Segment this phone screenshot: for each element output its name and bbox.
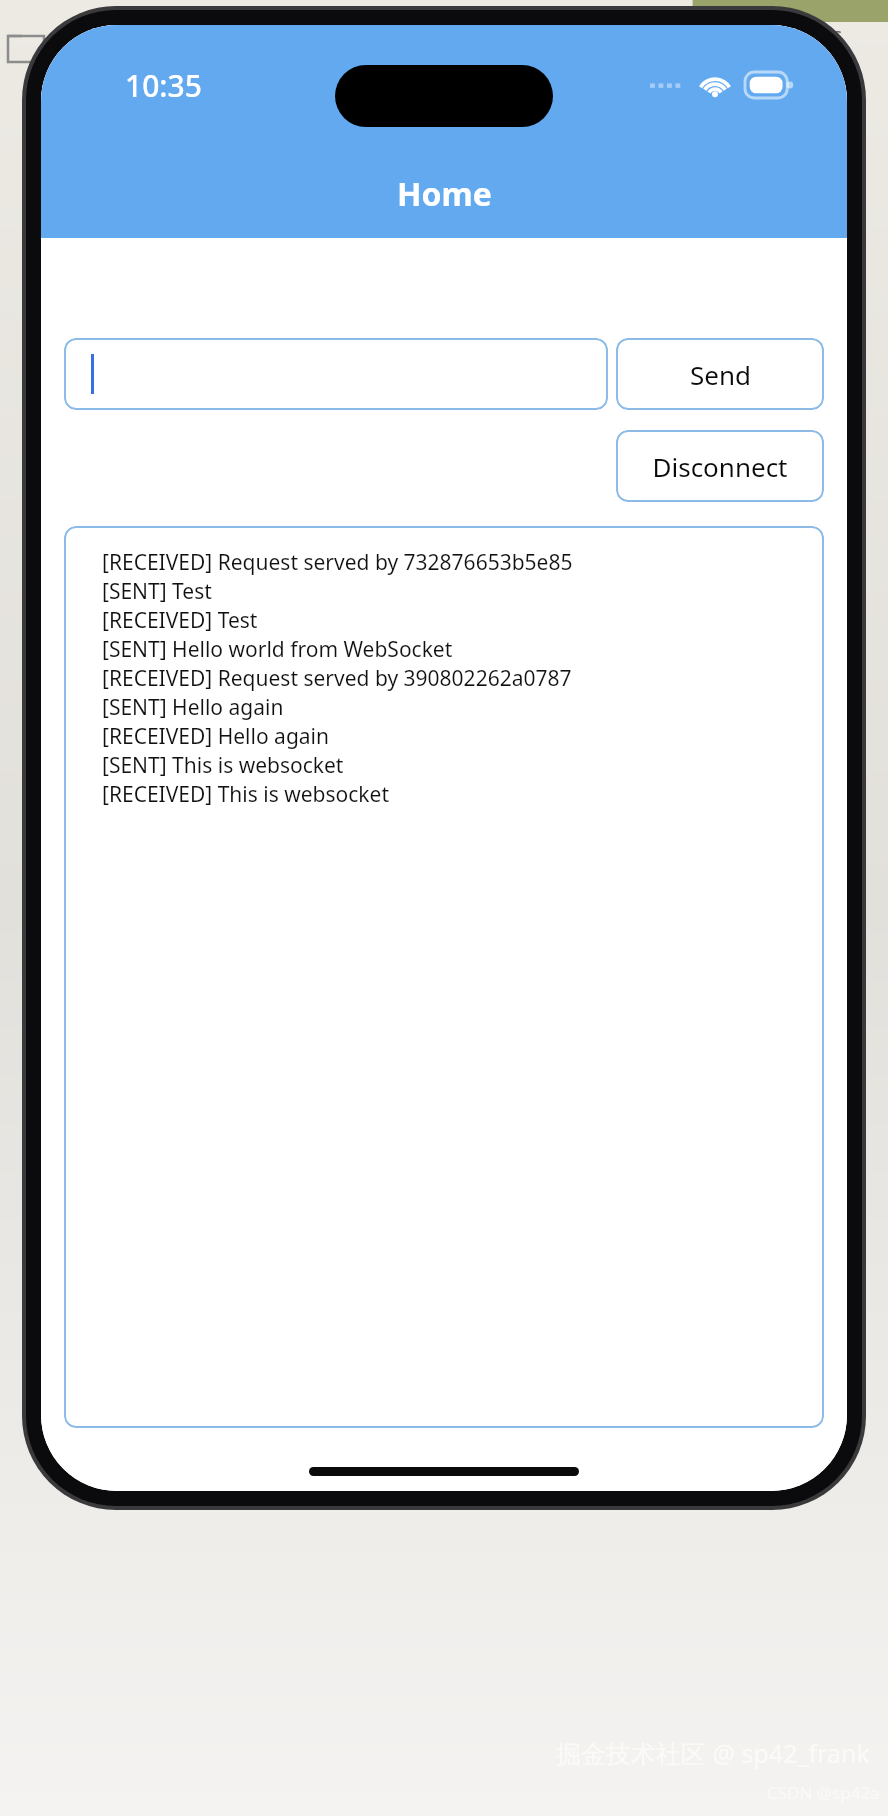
staticText: rks [815,22,843,48]
staticText: [RECEIVED] Test [102,606,258,635]
staticText: Home [397,172,492,216]
staticText: [SENT] This is websocket [102,751,344,780]
staticText: [SENT] Hello again [102,693,284,722]
staticText: [SENT] Test [102,577,212,606]
staticText: 10:35 [125,65,202,106]
staticText: [RECEIVED] Hello again [102,722,329,751]
staticText: Send [690,357,751,392]
staticText: [RECEIVED] This is websocket [102,780,389,809]
staticText: [SENT] Hello world from WebSocket [102,635,453,664]
button[interactable]: Message input [64,338,608,410]
button[interactable]: Send [616,338,824,410]
staticText: Disconnect [652,449,788,484]
staticText: [RECEIVED] Request served by 732876653b5… [102,548,573,577]
staticText: [RECEIVED] Request served by 390802262a0… [102,664,572,693]
button[interactable]: Disconnect [616,430,824,502]
staticText: 掘金技术社区 @ sp42_frank [556,1736,870,1770]
